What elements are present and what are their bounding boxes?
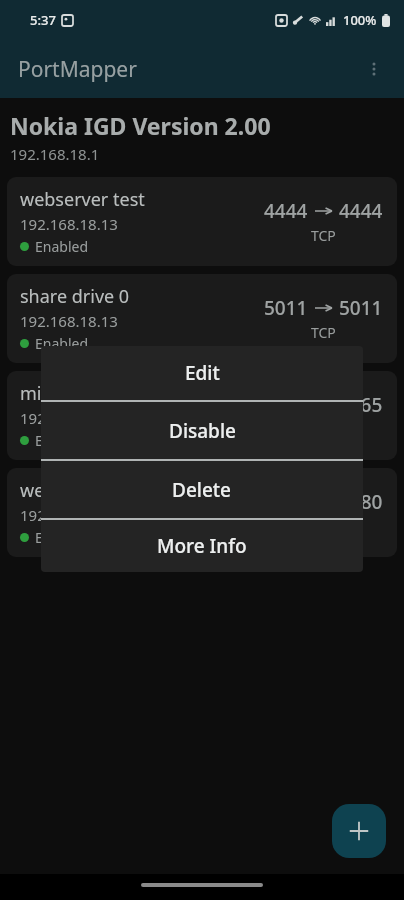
button[interactable]: webserver	[7, 468, 397, 557]
staticText: TCP	[311, 517, 336, 536]
staticText: 25565	[242, 392, 297, 418]
staticText: More Info	[157, 533, 247, 559]
staticText: Enabled	[35, 431, 89, 450]
staticText: 5:37	[30, 11, 56, 29]
button[interactable]: minecraft	[7, 371, 397, 460]
staticText: Delete	[172, 477, 232, 503]
staticText: 8080	[339, 489, 383, 515]
button[interactable]: More options	[352, 47, 396, 91]
staticText: 4444	[264, 198, 308, 224]
button[interactable]: Edit	[41, 346, 363, 400]
button[interactable]: More Info	[41, 520, 363, 572]
staticText: 100%	[343, 11, 377, 29]
staticText: Enabled	[35, 334, 89, 353]
staticText: Disable	[169, 418, 236, 444]
staticText: 192.168.18.13	[20, 505, 118, 525]
button[interactable]: Add port mapping	[332, 804, 386, 858]
button[interactable]: share drive 0	[7, 274, 397, 363]
button[interactable]: Delete	[41, 461, 363, 518]
staticText: TCP	[311, 323, 336, 342]
staticText: 25565	[328, 392, 383, 418]
button[interactable]: Disable	[41, 402, 363, 459]
staticText: Enabled	[35, 528, 89, 547]
staticText: 192.168.18.13	[20, 311, 118, 331]
staticText: 5011	[339, 295, 383, 321]
staticText: minecraft	[20, 381, 102, 406]
staticText: 4444	[339, 198, 383, 224]
staticText: 192.168.18.13	[20, 214, 118, 234]
staticText: webserver test	[20, 187, 145, 212]
staticText: Enabled	[35, 237, 89, 256]
staticText: TCP	[311, 226, 336, 245]
staticText: PortMapper	[18, 55, 137, 84]
staticText: Edit	[185, 360, 220, 386]
staticText: Nokia IGD Version 2.00	[10, 110, 271, 141]
button[interactable]: webserver test	[7, 177, 397, 266]
staticText: 5011	[264, 295, 308, 321]
staticText: share drive 0	[20, 284, 130, 309]
staticText: 192.168.18.13	[20, 408, 118, 428]
staticText: 192.168.18.1	[10, 144, 100, 164]
staticText: webserver	[20, 478, 109, 503]
